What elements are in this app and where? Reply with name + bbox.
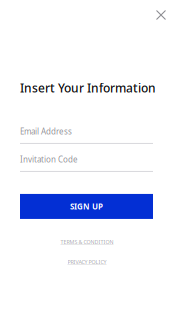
staticText: PRIVACY POLICY [67,258,106,265]
staticText: SIGN UP [70,201,103,212]
button[interactable]: Email Address [20,127,153,144]
staticText: TERMS & CONDITION [60,238,113,245]
staticText: Email Address [20,126,72,137]
button[interactable]: PRIVACY POLICY [0,257,174,267]
button[interactable]: SIGN UP [20,194,153,219]
button[interactable]: TERMS & CONDITION [0,237,174,247]
staticText: Invitation Code [20,154,78,165]
button[interactable]: Close [150,4,172,26]
staticText: Insert Your Information [20,80,156,96]
button[interactable]: Invitation Code [20,155,153,172]
